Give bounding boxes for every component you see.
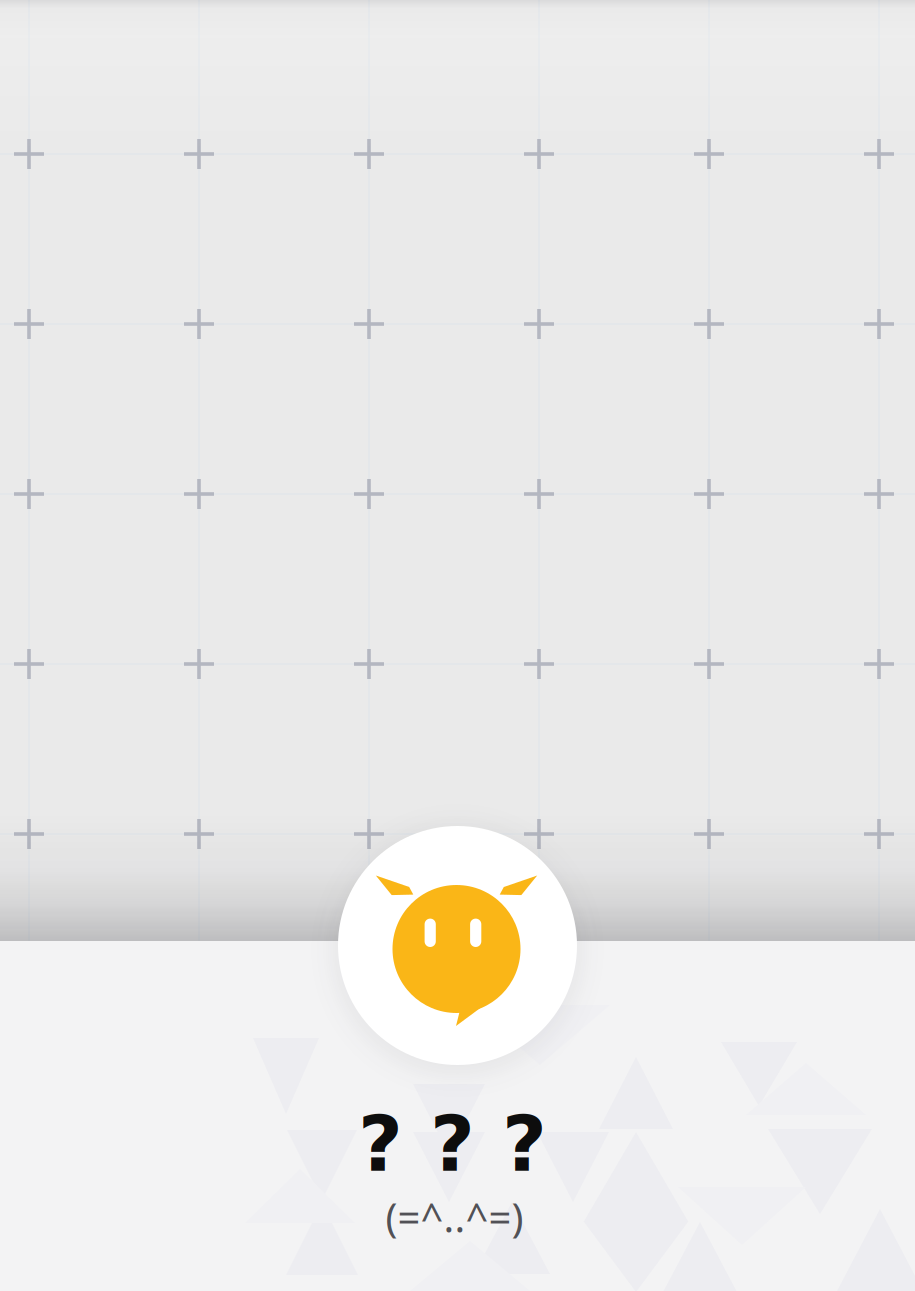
staticText: ? ? ? xyxy=(358,1099,547,1189)
staticText: (=^..^=) xyxy=(385,1190,523,1244)
